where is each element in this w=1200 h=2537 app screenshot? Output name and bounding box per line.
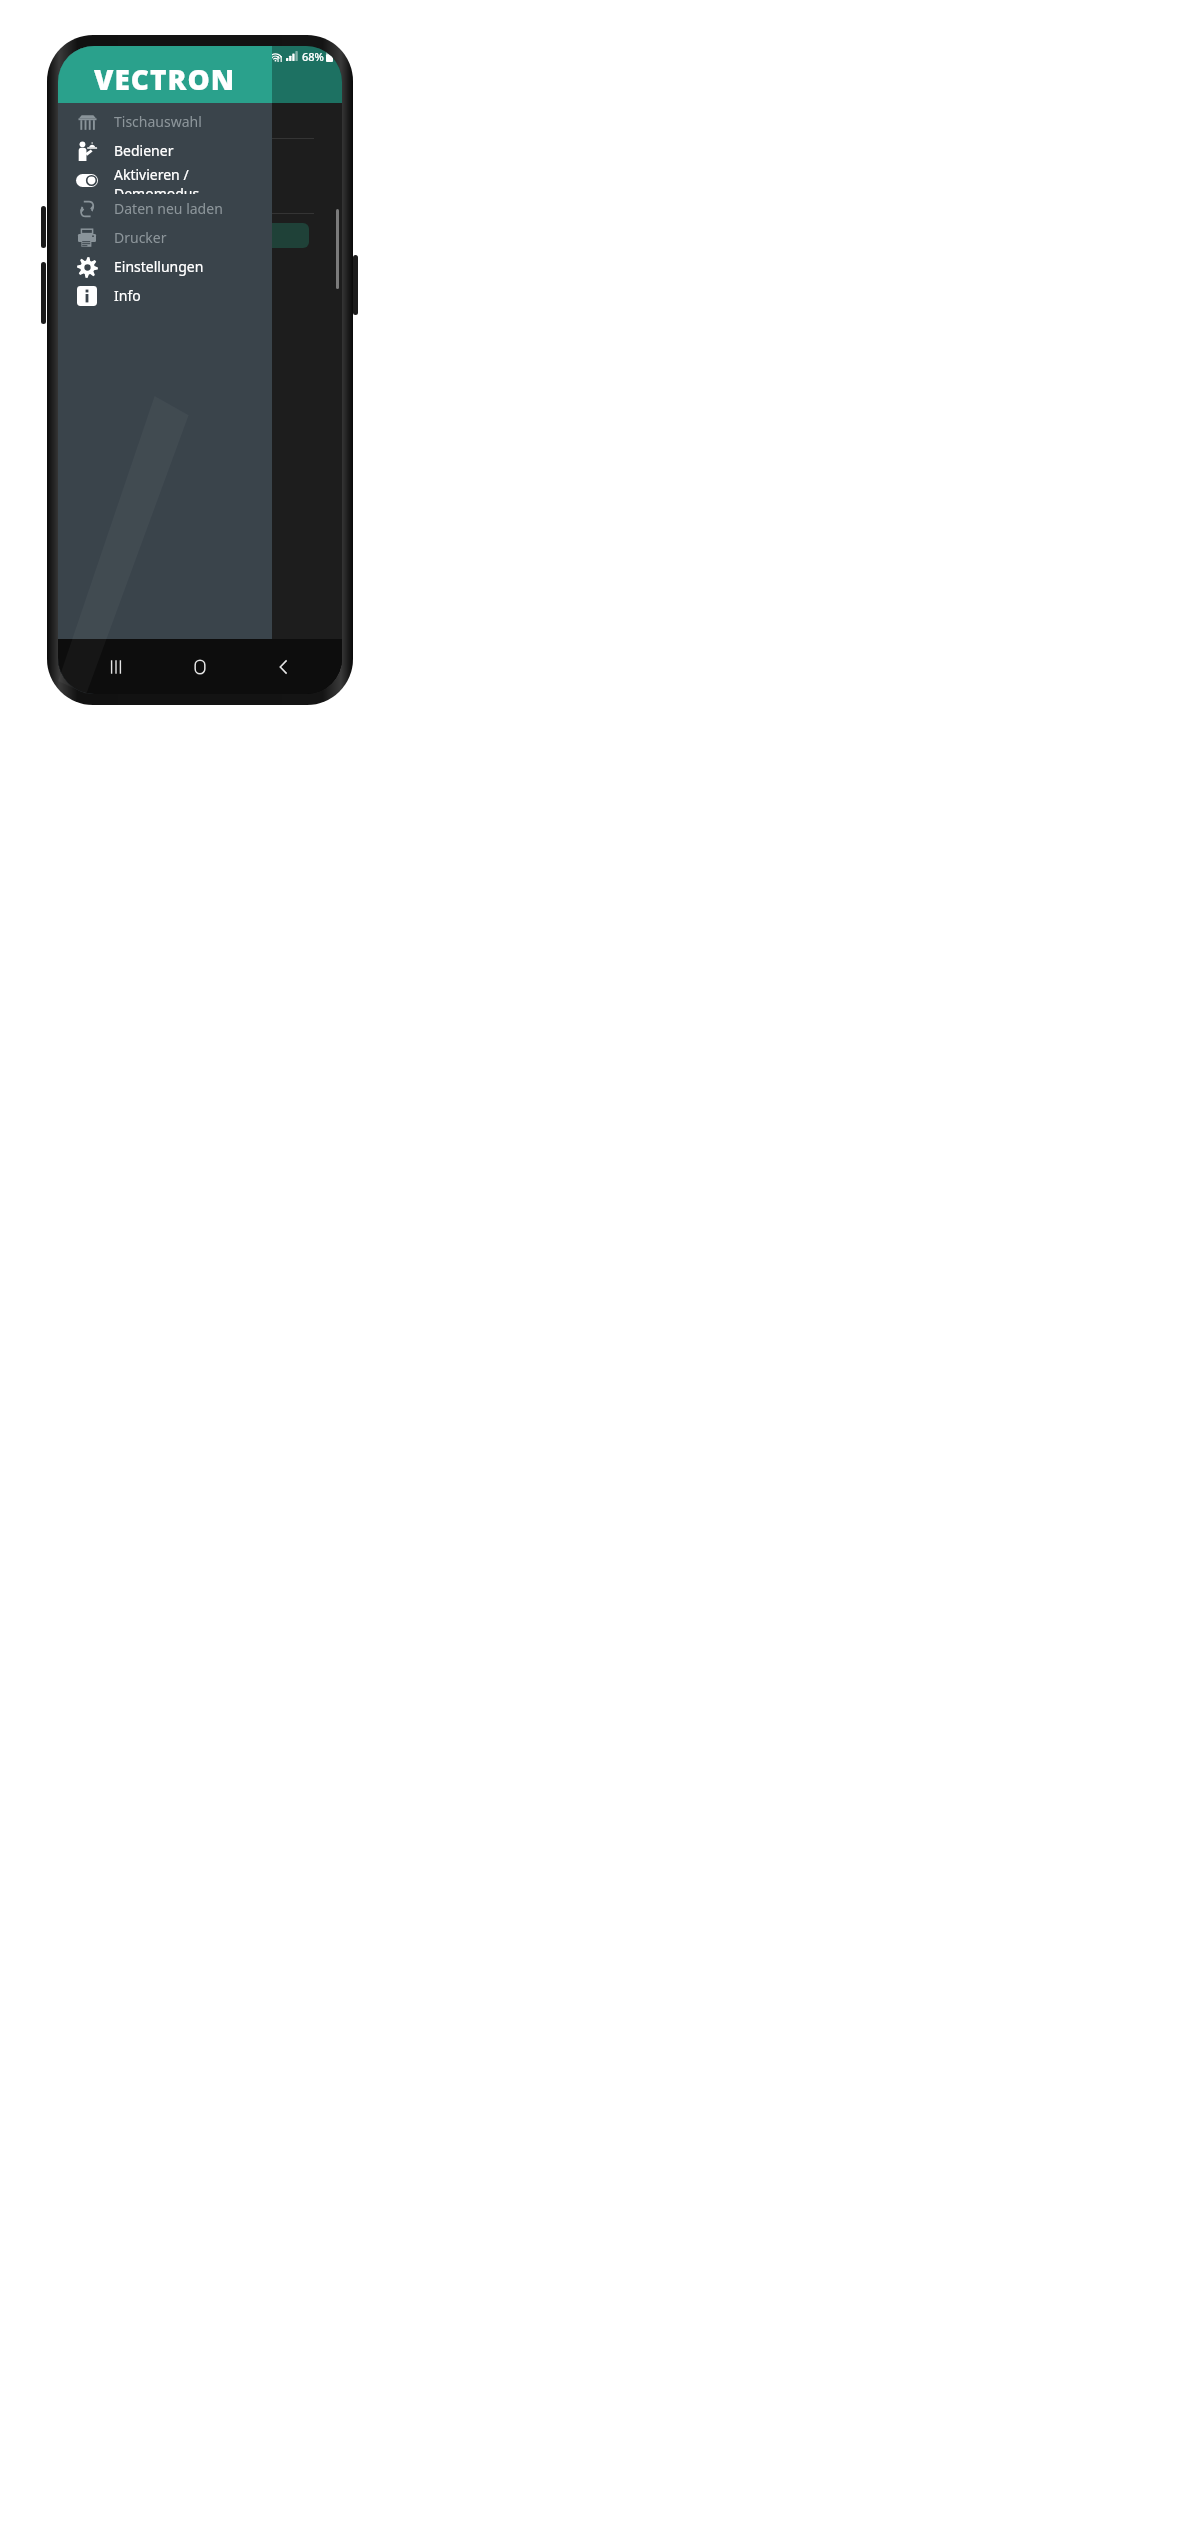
button[interactable]: Back xyxy=(258,641,310,693)
staticText: 15:15 xyxy=(68,49,97,64)
staticText: VECTRON xyxy=(94,60,236,98)
button[interactable]: Recent apps xyxy=(90,641,142,693)
staticText: Aktivieren / Demomodus xyxy=(114,165,272,194)
staticText: Einstellungen xyxy=(114,257,204,276)
staticText: Drucker xyxy=(114,228,167,247)
staticText: Bediener xyxy=(114,141,174,160)
staticText: Tischauswahl xyxy=(114,112,202,131)
button[interactable]: Tischauswahl xyxy=(58,107,272,136)
button[interactable]: Aktivieren / Demomodus xyxy=(58,165,272,194)
button[interactable]: Daten neu laden xyxy=(58,194,272,223)
button[interactable]: Drucker xyxy=(58,223,272,252)
button[interactable]: Einstellungen xyxy=(58,252,272,281)
button[interactable]: Home xyxy=(174,641,226,693)
staticText: Daten neu laden xyxy=(114,199,223,218)
button[interactable]: Back xyxy=(258,641,310,693)
button[interactable]: Home xyxy=(174,641,226,693)
staticText: 68% xyxy=(302,49,324,64)
button[interactable]: Info xyxy=(58,281,272,310)
button[interactable] xyxy=(82,223,309,248)
button[interactable]: Recent apps xyxy=(90,641,142,693)
staticText: Info xyxy=(114,286,141,305)
button[interactable]: Bediener xyxy=(58,136,272,165)
